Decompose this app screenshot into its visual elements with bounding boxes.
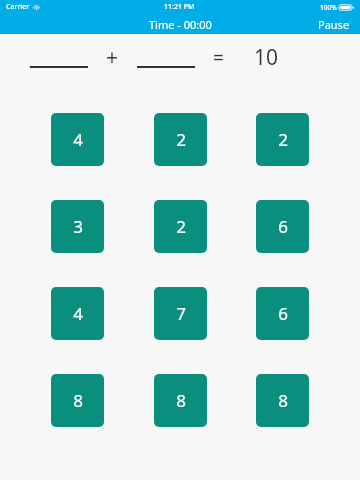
staticText: 6 [278,215,288,238]
staticText: 4 [73,302,83,325]
button[interactable]: 2 [154,200,207,253]
button[interactable]: 8 [256,374,309,427]
button[interactable]: 3 [51,200,104,253]
staticText: 100% [320,3,337,12]
button[interactable]: Pause [308,15,360,34]
button[interactable]: 7 [154,287,207,340]
button[interactable]: 2 [154,113,207,166]
staticText: Carrier [6,2,30,12]
button[interactable]: 4 [51,113,104,166]
staticText: 2 [278,128,288,151]
button[interactable]: 8 [51,374,104,427]
staticText: 8 [278,389,288,412]
staticText: 2 [176,215,186,238]
staticText: 4 [73,128,83,151]
button[interactable]: 2 [256,113,309,166]
staticText: 2 [176,128,186,151]
staticText: Pause [318,17,350,32]
staticText: 7 [176,302,186,325]
staticText: = [213,45,224,71]
button[interactable] [137,40,195,68]
staticText: 11:21 PM [164,2,195,12]
staticText: 10 [254,43,279,72]
staticText: 6 [278,302,288,325]
staticText: + [106,43,119,72]
staticText: Time - 00:00 [149,17,212,32]
staticText: 8 [176,389,186,412]
staticText: 8 [73,389,83,412]
button[interactable]: 6 [256,200,309,253]
button[interactable] [30,40,88,68]
button[interactable]: 6 [256,287,309,340]
button[interactable]: 4 [51,287,104,340]
button[interactable]: 8 [154,374,207,427]
staticText: 3 [73,215,83,238]
